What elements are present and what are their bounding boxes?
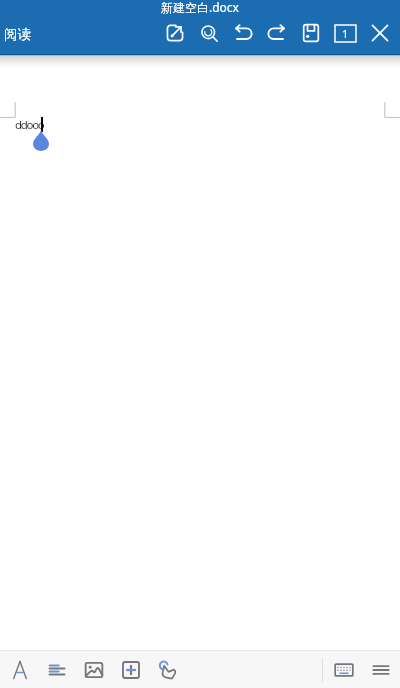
button[interactable]: Close bbox=[363, 16, 397, 50]
staticText: ddooo bbox=[15, 117, 44, 133]
button[interactable]: Page 1 bbox=[328, 16, 362, 50]
button[interactable]: Insert bbox=[114, 653, 148, 687]
button[interactable]: 阅读 bbox=[0, 23, 37, 46]
button[interactable]: Undo bbox=[226, 16, 260, 50]
button[interactable]: Touch tools bbox=[151, 653, 185, 687]
staticText: 1 bbox=[342, 26, 349, 41]
button[interactable]: Insert picture bbox=[77, 653, 111, 687]
button[interactable]: Keyboard bbox=[327, 653, 361, 687]
button[interactable]: Font bbox=[3, 653, 37, 687]
staticText: 新建空白.docx bbox=[161, 0, 239, 15]
button[interactable]: Menu bbox=[364, 653, 398, 687]
button[interactable]: Search bbox=[192, 16, 226, 50]
button[interactable]: Export bbox=[158, 16, 192, 50]
button[interactable]: Redo bbox=[260, 16, 294, 50]
button[interactable]: Paragraph bbox=[40, 653, 74, 687]
button[interactable]: Save bbox=[294, 16, 328, 50]
staticText: 阅读 bbox=[4, 26, 31, 43]
